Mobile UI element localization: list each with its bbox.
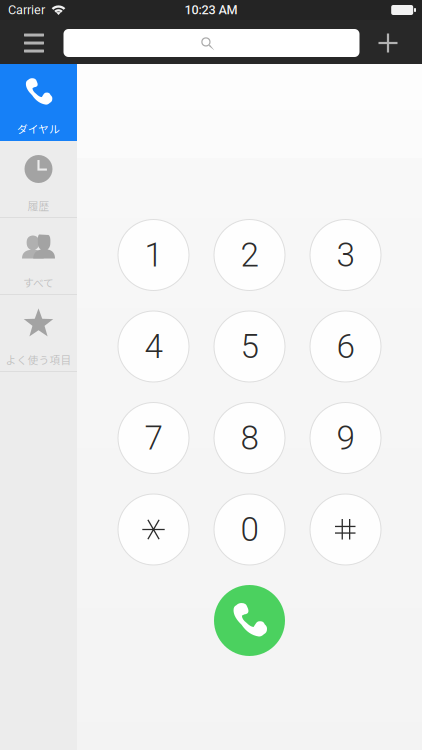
button[interactable]: 6 [310,311,381,382]
button[interactable]: Call [214,585,285,656]
staticText: 6 [336,327,354,366]
staticText: 4 [144,327,162,366]
button[interactable]: すべて [0,218,77,295]
button[interactable]: Menu [12,21,56,65]
staticText: 2 [240,235,258,275]
button[interactable]: Star [118,494,189,565]
button[interactable]: 8 [214,402,285,473]
button[interactable]: 4 [118,311,189,382]
button[interactable]: 0 [214,494,285,565]
staticText: 9 [336,418,354,458]
staticText: ダイヤル [17,121,60,136]
staticText: 5 [240,327,258,366]
staticText: すべて [23,275,54,290]
staticText: 履歴 [27,198,49,213]
staticText: 10:23 AM [184,3,237,17]
staticText: よく使う項目 [5,352,71,367]
button[interactable]: よく使う項目 [0,295,77,372]
button[interactable]: 履歴 [0,141,77,218]
staticText: 0 [240,510,258,549]
staticText: Carrier [8,3,45,17]
button[interactable]: 5 [214,311,285,382]
button[interactable]: 2 [214,219,285,290]
button[interactable]: 7 [118,402,189,473]
button[interactable]: Add [366,21,410,65]
staticText: 7 [144,418,162,458]
staticText: 8 [240,418,258,458]
button[interactable]: 3 [310,219,381,290]
staticText: 1 [144,235,162,275]
button[interactable]: Pound [310,494,381,565]
staticText: 3 [336,235,354,275]
button[interactable]: ダイヤル [0,64,77,141]
button[interactable]: 1 [118,219,189,290]
button[interactable]: 9 [310,402,381,473]
button[interactable]: Search [63,29,359,57]
